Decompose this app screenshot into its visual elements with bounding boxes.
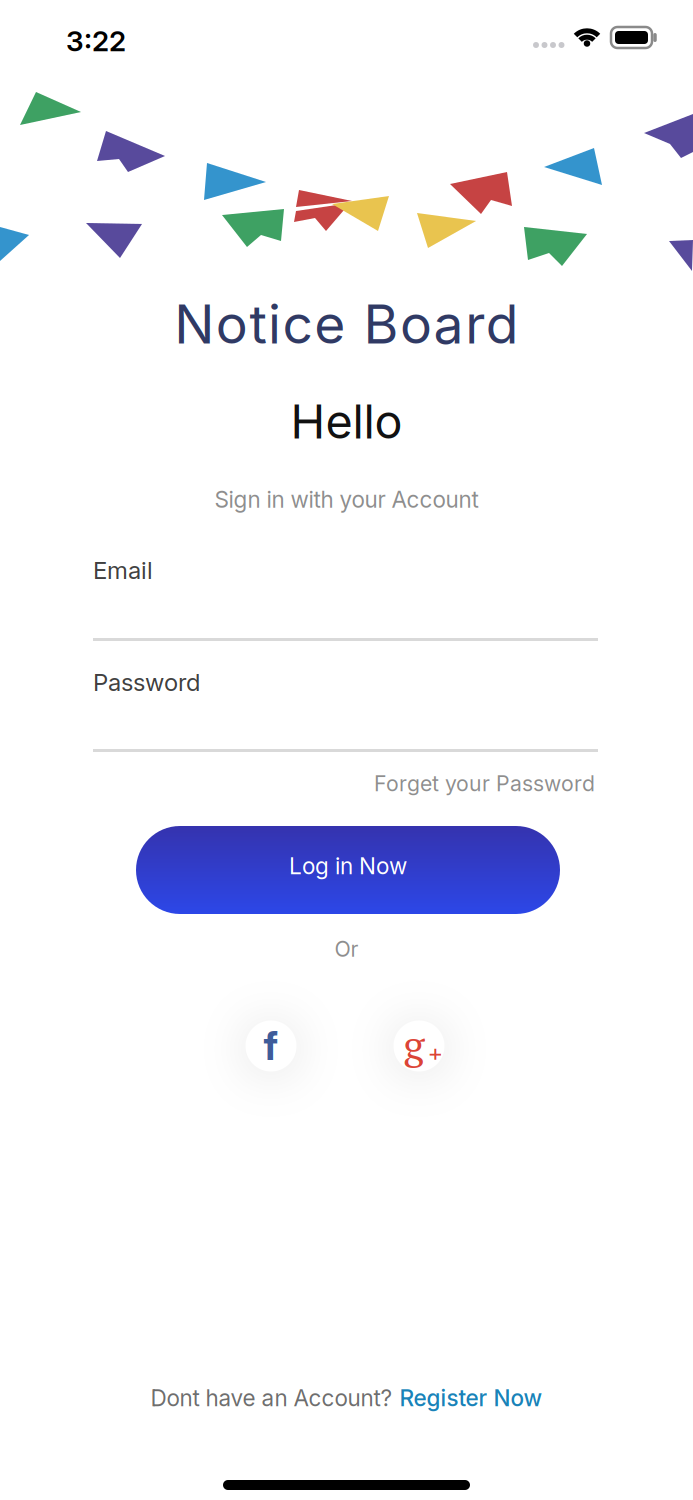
button[interactable]: Password [93, 668, 598, 752]
staticText: f [263, 1023, 278, 1069]
staticText: Or [334, 936, 358, 962]
staticText: Log in Now [289, 853, 407, 879]
button[interactable]: Forget your Password [374, 771, 595, 796]
button[interactable]: Sign in with Google [393, 1020, 444, 1071]
staticText: 3:22 [66, 24, 126, 57]
button[interactable]: Sign in with Facebook [245, 1020, 296, 1071]
staticText: Forget your Password [374, 771, 595, 796]
button[interactable]: Register Now [399, 1385, 542, 1411]
staticText: Password [93, 668, 200, 696]
staticText: Register Now [399, 1385, 542, 1411]
button[interactable]: Log in Now [136, 826, 560, 914]
button[interactable]: Email [93, 556, 598, 641]
staticText: Email [93, 556, 153, 584]
staticText: Sign in with your Account [214, 486, 478, 513]
staticText: Hello [290, 394, 402, 449]
staticText: Dont have an Account? [150, 1385, 392, 1411]
staticText: + [427, 1039, 443, 1067]
staticText: g [403, 1018, 424, 1071]
staticText: Notice Board [174, 292, 519, 355]
